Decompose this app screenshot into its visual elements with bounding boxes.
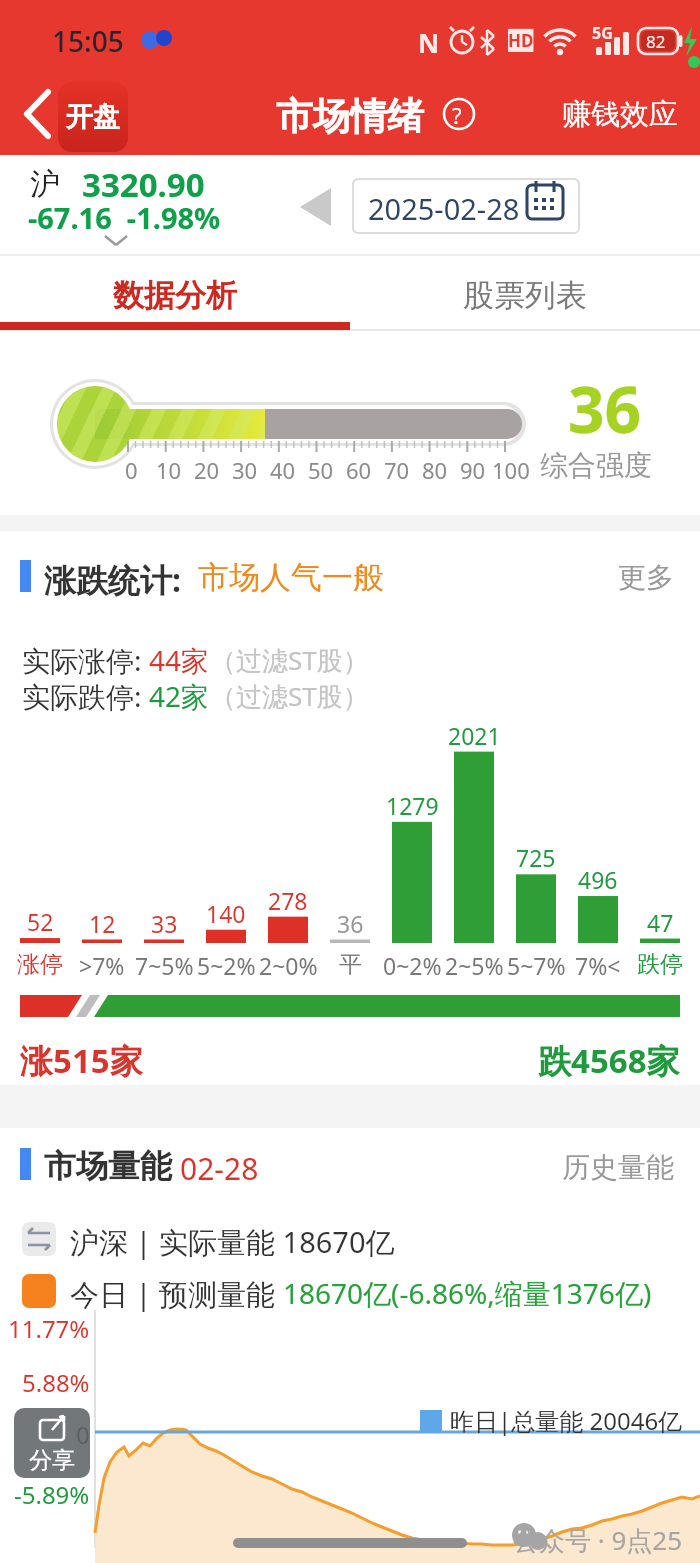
button[interactable]: 数据分析 <box>0 262 350 328</box>
staticText: 15:05 <box>52 22 124 60</box>
staticText: 平 <box>339 950 362 979</box>
staticText: 11.77% <box>8 1312 90 1345</box>
button[interactable] <box>20 85 60 145</box>
staticText: 5.88% <box>22 1366 90 1399</box>
staticText: （过滤ST股） <box>210 642 369 678</box>
staticText: 昨日|总量能 20046亿 <box>450 1404 683 1437</box>
staticText: 赚钱效应 <box>562 96 678 133</box>
staticText: 实际涨停: <box>22 641 149 679</box>
staticText: ? <box>452 100 462 130</box>
button[interactable]: 历史量能 <box>562 1150 674 1185</box>
staticText: 140 <box>206 898 246 929</box>
staticText: 90 <box>460 455 486 485</box>
staticText: 更多 <box>618 560 674 595</box>
staticText: 沪 <box>30 165 60 203</box>
staticText: 42家 <box>149 677 210 715</box>
staticText: 60 <box>346 455 372 485</box>
staticText: 278 <box>268 885 308 916</box>
button[interactable]: 更多 <box>618 560 674 595</box>
staticText: 30 <box>232 455 258 485</box>
staticText: 数据分析 <box>113 276 237 315</box>
staticText: 5~7% <box>507 950 566 981</box>
staticText: 涨停 <box>17 950 63 979</box>
staticText: 涨跌统计: <box>44 558 181 602</box>
staticText: 18670亿(-6.86%,缩量1376亿) <box>283 1274 652 1312</box>
staticText: 市场情绪 <box>276 93 424 140</box>
staticText: 50 <box>308 455 334 485</box>
staticText: 综合强度 <box>540 448 652 483</box>
button[interactable]: 股票列表 <box>350 262 700 328</box>
staticText: 10 <box>156 455 182 485</box>
staticText: 2~0% <box>259 950 318 981</box>
staticText: 开盘 <box>66 100 120 134</box>
staticText: 33 <box>151 908 178 939</box>
staticText: -5.89% <box>14 1478 90 1511</box>
staticText: 今日 | 预测量能 <box>70 1274 283 1314</box>
staticText: 725 <box>516 842 556 873</box>
staticText: 44家 <box>149 641 210 679</box>
staticText: 5G <box>592 22 613 44</box>
button[interactable]: 分享 <box>14 1408 90 1478</box>
staticText: 12 <box>89 908 116 939</box>
staticText: 市场量能 <box>44 1146 172 1186</box>
staticText: 0 <box>125 455 138 485</box>
staticText: 36 <box>568 365 642 452</box>
staticText: 历史量能 <box>562 1150 674 1185</box>
staticText: 36 <box>337 908 364 939</box>
staticText: 3320.90 <box>82 162 205 207</box>
staticText: 实际跌停: <box>22 677 149 715</box>
staticText: 47 <box>647 907 674 938</box>
staticText: 20 <box>194 455 220 485</box>
staticText: 公众号 · 9点25 <box>513 1522 683 1558</box>
staticText: 496 <box>578 864 618 895</box>
staticText: 80 <box>422 455 448 485</box>
staticText: 70 <box>384 455 410 485</box>
staticText: 100 <box>492 455 530 485</box>
staticText: 02-28 <box>180 1148 259 1189</box>
staticText: 82 <box>646 30 666 53</box>
staticText: 涨515家 <box>20 1038 143 1083</box>
staticText: 40 <box>270 455 296 485</box>
staticText: 1279 <box>386 790 439 821</box>
staticText: 股票列表 <box>463 276 587 315</box>
staticText: 2021 <box>448 720 501 751</box>
staticText: 沪深 | 实际量能 18670亿 <box>70 1222 395 1262</box>
staticText: 2025-02-28 <box>368 189 520 228</box>
staticText: 分享 <box>29 1446 75 1475</box>
staticText: >7% <box>79 950 125 981</box>
staticText: N <box>418 25 440 60</box>
staticText: 52 <box>27 906 54 937</box>
staticText: 7%< <box>575 950 621 981</box>
staticText: 5~2% <box>197 950 256 981</box>
button[interactable]: 赚钱效应 <box>562 96 678 133</box>
staticText: 跌停 <box>637 950 683 979</box>
staticText: 跌4568家 <box>538 1038 680 1083</box>
staticText: -67.16 -1.98% <box>28 198 221 237</box>
staticText: 2~5% <box>445 950 504 981</box>
staticText: 0 <box>76 1418 90 1451</box>
staticText: 市场人气一般 <box>198 558 384 597</box>
button[interactable]: 2025-02-28 <box>352 178 580 234</box>
staticText: 0~2% <box>383 950 442 981</box>
staticText: HD <box>508 29 534 52</box>
staticText: 7~5% <box>135 950 194 981</box>
staticText: （过滤ST股） <box>210 678 369 714</box>
